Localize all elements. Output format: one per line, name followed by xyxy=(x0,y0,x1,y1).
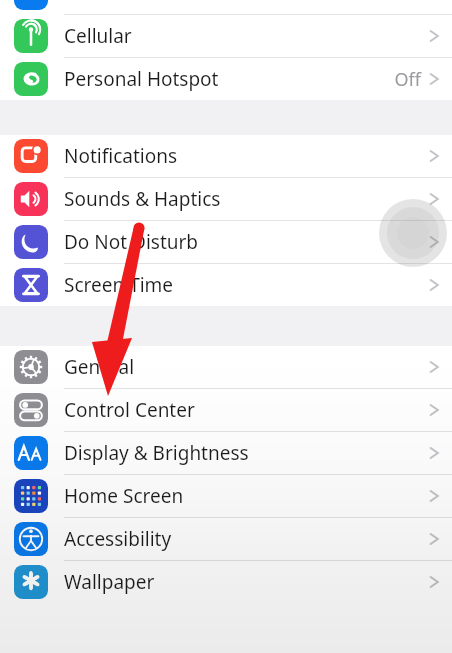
button[interactable]: Home Screen xyxy=(0,475,452,517)
staticText: Personal Hotspot xyxy=(64,66,394,92)
button[interactable]: Wallpaper xyxy=(0,561,452,603)
staticText: Display & Brightness xyxy=(64,440,429,466)
button[interactable]: Personal Hotspot xyxy=(0,58,452,100)
button[interactable]: Do Not Disturb xyxy=(0,221,452,263)
staticText: Do Not Disturb xyxy=(64,229,429,255)
staticText: Control Center xyxy=(64,397,429,423)
staticText: Notifications xyxy=(64,143,429,169)
staticText: General xyxy=(64,354,429,380)
button[interactable]: Control Center xyxy=(0,389,452,431)
button[interactable]: General xyxy=(0,346,452,388)
staticText: Wallpaper xyxy=(64,569,429,595)
staticText: Home Screen xyxy=(64,483,429,509)
button[interactable]: Screen Time xyxy=(0,264,452,306)
button[interactable]: Accessibility xyxy=(0,518,452,560)
button[interactable]: Display & Brightness xyxy=(0,432,452,474)
button[interactable] xyxy=(0,0,452,14)
button[interactable]: Notifications xyxy=(0,135,452,177)
staticText: Screen Time xyxy=(64,272,429,298)
staticText: Accessibility xyxy=(64,526,429,552)
button[interactable]: Cellular xyxy=(0,15,452,57)
staticText: Off xyxy=(394,67,421,92)
button[interactable]: Sounds & Haptics xyxy=(0,178,452,220)
staticText: Cellular xyxy=(64,23,429,49)
staticText: Sounds & Haptics xyxy=(64,186,429,212)
